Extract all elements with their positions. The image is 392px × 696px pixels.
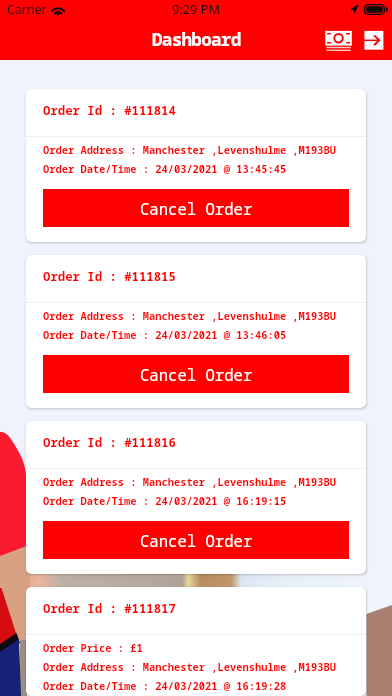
staticText: Order Date/Time : 24/03/2021 @ 13:45:45 [43, 162, 287, 176]
staticText: Order Address : Manchester ,Levenshulme … [43, 475, 337, 489]
staticText: Order Date/Time : 24/03/2021 @ 13:46:05 [43, 328, 287, 342]
staticText: Order Price : £1 [43, 641, 143, 655]
button[interactable]: Payments [320, 25, 356, 55]
staticText: Order Address : Manchester ,Levenshulme … [43, 309, 337, 323]
staticText: Order Id : #111815 [43, 268, 176, 285]
button[interactable]: Order Id : #111814 [26, 89, 366, 242]
button[interactable]: Order Id : #111815 [26, 255, 366, 408]
button[interactable]: Logout [356, 25, 392, 55]
staticText: Order Address : Manchester ,Levenshulme … [43, 660, 337, 674]
staticText: 9:29 PM [172, 0, 221, 17]
button[interactable]: Cancel Order [43, 521, 349, 559]
staticText: Order Date/Time : 24/03/2021 @ 16:19:28 [43, 679, 287, 693]
staticText: Order Date/Time : 24/03/2021 @ 16:19:15 [43, 494, 287, 508]
staticText: Order Id : #111814 [43, 102, 176, 119]
staticText: Cancel Order [140, 364, 253, 385]
button[interactable]: Order Id : #111817 [26, 587, 366, 696]
staticText: Order Id : #111817 [43, 600, 176, 617]
button[interactable]: Cancel Order [43, 189, 349, 227]
button[interactable]: Cancel Order [43, 355, 349, 393]
staticText: Order Address : Manchester ,Levenshulme … [43, 143, 337, 157]
staticText: Order Id : #111816 [43, 434, 176, 451]
staticText: Carrier [7, 1, 47, 18]
staticText: Dashboard [152, 27, 241, 51]
button[interactable]: Order Id : #111816 [26, 421, 366, 574]
staticText: Cancel Order [140, 198, 253, 219]
staticText: Cancel Order [140, 530, 253, 551]
